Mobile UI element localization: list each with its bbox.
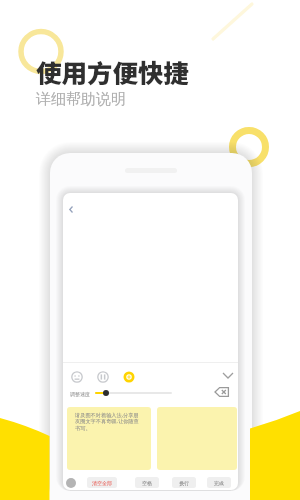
staticText: 详细帮助说明 bbox=[36, 90, 126, 109]
button[interactable]: Highlight bbox=[122, 370, 135, 383]
button[interactable]: Back bbox=[65, 203, 77, 215]
staticText: 使用方便快捷 bbox=[36, 53, 190, 90]
button[interactable]: Collapse bbox=[220, 367, 236, 383]
button[interactable] bbox=[95, 387, 172, 398]
button[interactable]: Pause bbox=[96, 370, 109, 383]
button[interactable]: Emoji bbox=[70, 370, 83, 383]
button[interactable]: 完成 bbox=[207, 477, 231, 488]
staticText: 清空全部 bbox=[92, 480, 112, 486]
staticText: 换行 bbox=[179, 480, 189, 486]
button[interactable]: 换行 bbox=[172, 477, 196, 488]
staticText: 完成 bbox=[214, 480, 224, 486]
button[interactable]: Menu bbox=[66, 478, 76, 488]
button[interactable]: 清空全部 bbox=[87, 477, 117, 488]
button[interactable]: Backspace bbox=[213, 385, 230, 399]
staticText: 请及图不对着输入法,分享朋友圈文字不再奇疆,让你随查书写。 bbox=[75, 411, 143, 432]
button[interactable]: 请及图不对着输入法,分享朋友圈文字不再奇疆,让你随查书写。 bbox=[67, 407, 151, 470]
staticText: 空格 bbox=[142, 480, 152, 486]
button[interactable]: 空格 bbox=[135, 477, 159, 488]
staticText: 调整速度 bbox=[70, 391, 90, 397]
